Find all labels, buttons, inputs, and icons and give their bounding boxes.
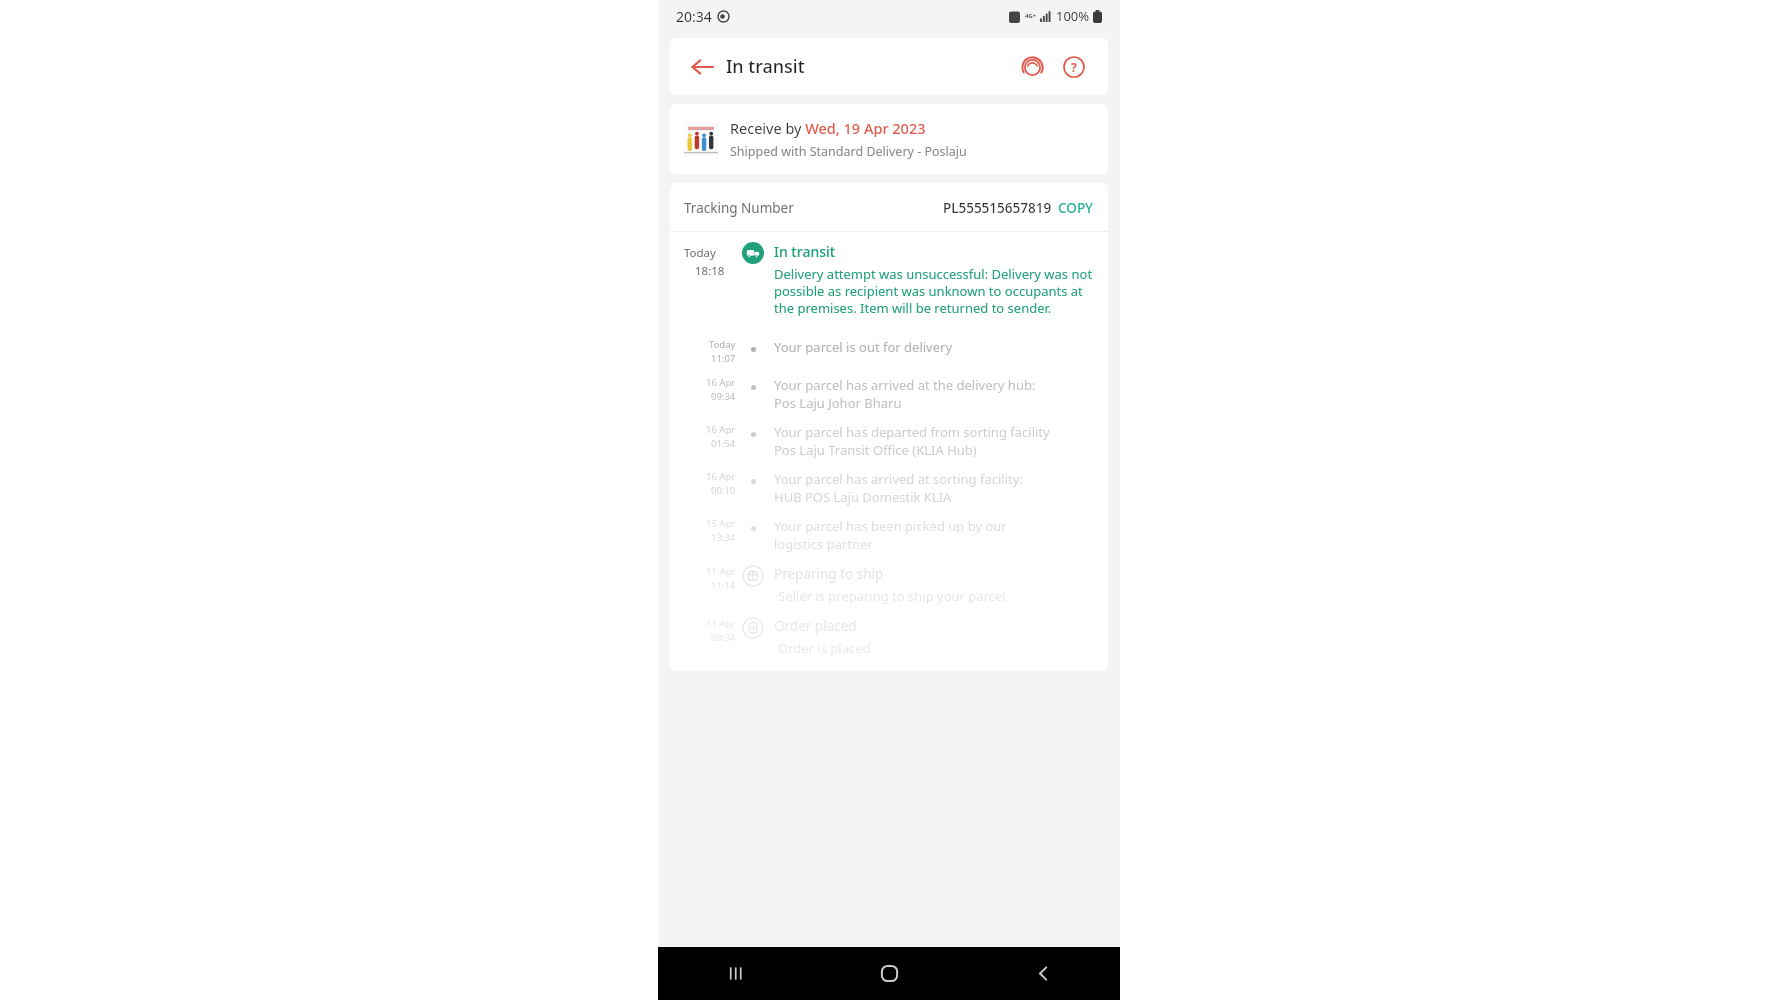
staticText: HUB POS Laju Domestik KLIA	[774, 488, 952, 506]
staticText: In transit	[774, 242, 836, 261]
staticText: 16 Apr	[706, 376, 736, 389]
button[interactable]: Home	[812, 947, 966, 1000]
staticText: 18:18	[695, 263, 725, 279]
staticText: Order placed	[774, 617, 857, 635]
staticText: Seller is preparing to ship your parcel	[778, 587, 1006, 605]
button[interactable]: Back	[682, 47, 722, 87]
button[interactable]: Customer support	[1010, 45, 1054, 89]
staticText: 13:34	[711, 531, 736, 544]
staticText: Shipped with Standard Delivery - Poslaju	[730, 143, 967, 160]
staticText: 09:34	[711, 631, 736, 644]
staticText: Preparing to ship	[774, 565, 884, 583]
staticText: Your parcel has departed from sorting fa…	[774, 423, 1050, 441]
button[interactable]: Receive by Wed, 19 Apr 2023	[670, 104, 1108, 174]
staticText: Pos Laju Johor Bharu	[774, 394, 902, 412]
staticText: In transit	[726, 54, 805, 79]
staticText: 11:14	[711, 579, 736, 592]
staticText: Receive by Wed, 19 Apr 2023	[730, 118, 926, 138]
staticText: Your parcel is out for delivery	[774, 338, 953, 356]
staticText: Today	[709, 338, 736, 351]
button[interactable]: COPY	[1058, 199, 1094, 217]
staticText: ?	[1071, 59, 1077, 75]
staticText: PL555515657819	[943, 199, 1052, 217]
button[interactable]: Recents	[658, 947, 812, 1000]
staticText: 11:07	[711, 352, 736, 365]
staticText: 4G+	[1025, 12, 1037, 20]
staticText: 11 Apr	[706, 565, 736, 578]
staticText: Pos Laju Transit Office (KLIA Hub)	[774, 441, 977, 459]
staticText: Delivery attempt was unsuccessful: Deliv…	[774, 265, 1094, 317]
staticText: Order is placed	[778, 639, 871, 657]
staticText: Your parcel has arrived at sorting facil…	[774, 470, 1023, 488]
staticText: 100%	[1056, 7, 1090, 25]
staticText: Today	[684, 245, 716, 261]
staticText: 11 Apr	[706, 617, 736, 630]
staticText: Tracking Number	[684, 199, 794, 217]
button[interactable]: Help	[1054, 47, 1094, 87]
staticText: Your parcel has been picked up by our	[774, 517, 1007, 535]
staticText: 16 Apr	[706, 423, 736, 436]
staticText: 09:34	[711, 390, 736, 403]
staticText: COPY	[1058, 199, 1094, 217]
staticText: logistics partner	[774, 535, 873, 553]
staticText: 01:54	[711, 437, 736, 450]
staticText: Your parcel has arrived at the delivery …	[774, 376, 1036, 394]
staticText: 16 Apr	[706, 470, 736, 483]
staticText: 15 Apr	[706, 517, 736, 530]
staticText: 20:34	[676, 7, 712, 26]
staticText: 00:10	[711, 484, 736, 497]
button[interactable]: Back	[966, 947, 1120, 1000]
